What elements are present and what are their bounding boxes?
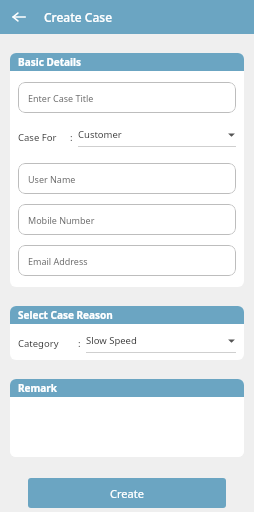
button[interactable]: Mobile Number [18,204,236,235]
staticText: Basic Details [18,55,82,69]
button[interactable]: Email Address [18,245,236,276]
button[interactable]: Enter Case Title [18,82,236,113]
button[interactable]: User Name [18,163,236,194]
staticText: Slow Speed [86,334,227,347]
button[interactable]: Category [18,330,236,356]
button[interactable]: Back [6,4,32,30]
staticText: : [70,131,73,144]
button[interactable]: Case For [18,124,236,150]
staticText: Select Case Reason [18,308,113,322]
staticText: Email Address [28,255,88,267]
staticText: User Name [28,173,76,185]
staticText: Customer [78,128,227,141]
staticText: Create [110,486,144,501]
button[interactable]: Create [28,478,226,508]
staticText: Category [18,337,78,350]
staticText: Case For [18,131,70,144]
staticText: Remark [18,381,57,395]
staticText: Create Case [44,9,113,25]
staticText: : [78,337,81,350]
staticText: Mobile Number [28,214,95,226]
staticText: Enter Case Title [28,92,94,104]
